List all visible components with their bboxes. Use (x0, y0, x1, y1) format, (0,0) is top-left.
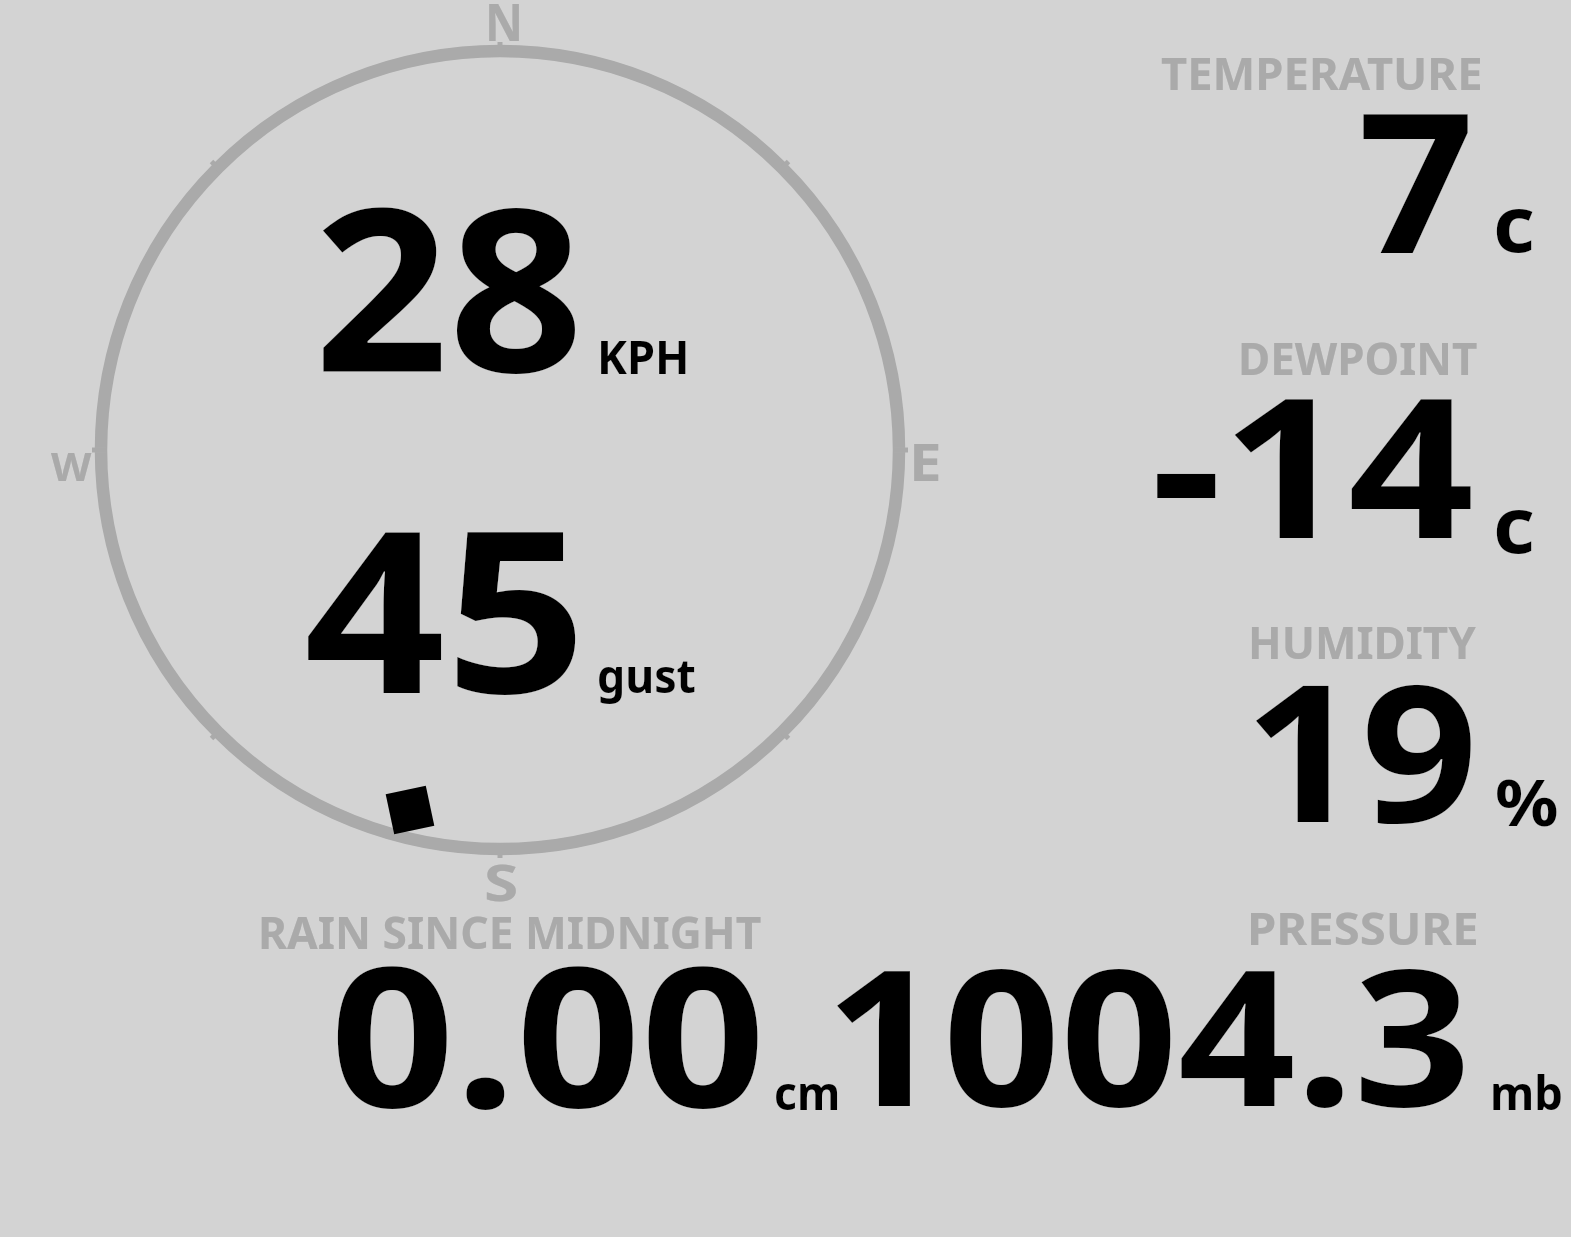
staticText: 45 (304, 453, 587, 759)
staticText: 7 (1358, 46, 1475, 309)
button[interactable]: Humidity 19 percent (1140, 605, 1570, 845)
staticText: mb (1490, 1061, 1563, 1124)
staticText: gust (597, 644, 697, 707)
staticText: 1004.3 (825, 905, 1472, 1161)
button[interactable]: Rain since midnight 0.00 cm (250, 900, 850, 1130)
staticText: PRESSURE (1247, 896, 1479, 958)
staticText: TEMPERATURE (1161, 41, 1483, 103)
staticText: DEWPOINT (1238, 326, 1477, 388)
staticText: 19 (1244, 618, 1479, 878)
staticText: cm (774, 1061, 840, 1124)
staticText: % (1495, 756, 1558, 845)
staticText: E (909, 425, 943, 496)
staticText: c (1493, 471, 1535, 576)
staticText: -14 (1151, 331, 1475, 594)
staticText: HUMIDITY (1248, 610, 1476, 672)
button[interactable]: Pressure 1004.3 millibars (860, 900, 1570, 1130)
button[interactable]: Temperature 7 degrees Celsius (1140, 30, 1570, 280)
staticText: 0.00 (330, 899, 766, 1164)
staticText: S (484, 846, 519, 915)
staticText: c (1493, 170, 1535, 275)
staticText: N (485, 0, 524, 56)
button[interactable]: Wind direction and speed dial (60, 10, 940, 890)
staticText: W (51, 439, 92, 492)
button[interactable]: Dewpoint minus 14 degrees Celsius (1140, 320, 1570, 570)
staticText: RAIN SINCE MIDNIGHT (258, 900, 762, 962)
staticText: KPH (597, 323, 690, 388)
staticText: 28 (314, 130, 584, 438)
